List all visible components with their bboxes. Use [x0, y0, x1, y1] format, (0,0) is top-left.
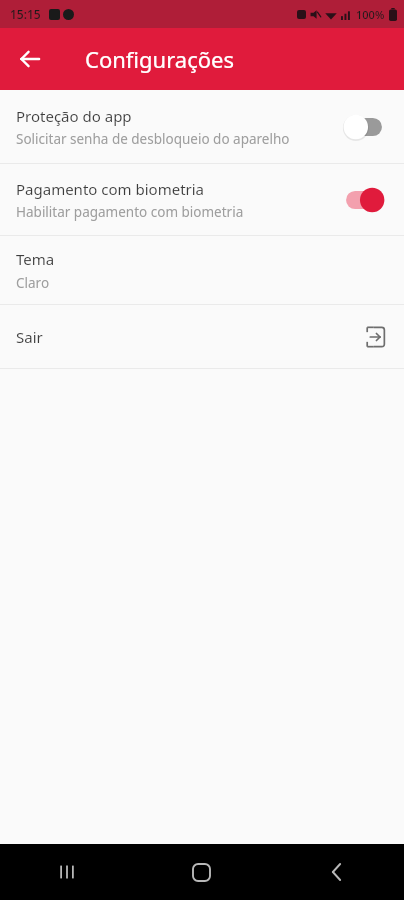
button[interactable]: Voltar: [8, 37, 52, 81]
staticText: 15:15: [10, 6, 41, 22]
button[interactable]: Voltar: [269, 844, 404, 900]
staticText: Pagamento com biometria: [16, 179, 205, 199]
staticText: Solicitar senha de desbloqueio do aparel…: [16, 130, 290, 148]
staticText: 100%: [356, 7, 385, 22]
button[interactable]: Sair: [0, 305, 404, 368]
button[interactable]: Pagamento com biometria: [0, 164, 404, 235]
staticText: Proteção do app: [16, 106, 132, 126]
staticText: Claro: [16, 274, 50, 292]
button[interactable]: Início: [134, 844, 269, 900]
button[interactable]: Tema: [0, 236, 404, 304]
staticText: Sair: [16, 327, 43, 347]
button[interactable]: Proteção do app: [0, 90, 404, 163]
staticText: Habilitar pagamento com biometria: [16, 203, 244, 221]
staticText: Configurações: [85, 44, 234, 74]
staticText: Tema: [16, 249, 55, 269]
button[interactable]: Recentes: [0, 844, 134, 900]
